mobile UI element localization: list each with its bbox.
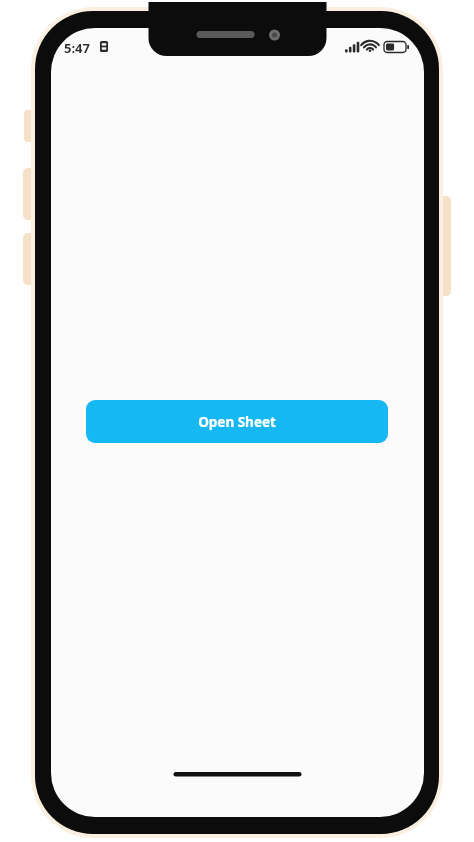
button[interactable]: Open Sheet — [86, 400, 388, 443]
staticText: Open Sheet — [198, 413, 276, 431]
staticText: 5:47 — [64, 39, 90, 57]
